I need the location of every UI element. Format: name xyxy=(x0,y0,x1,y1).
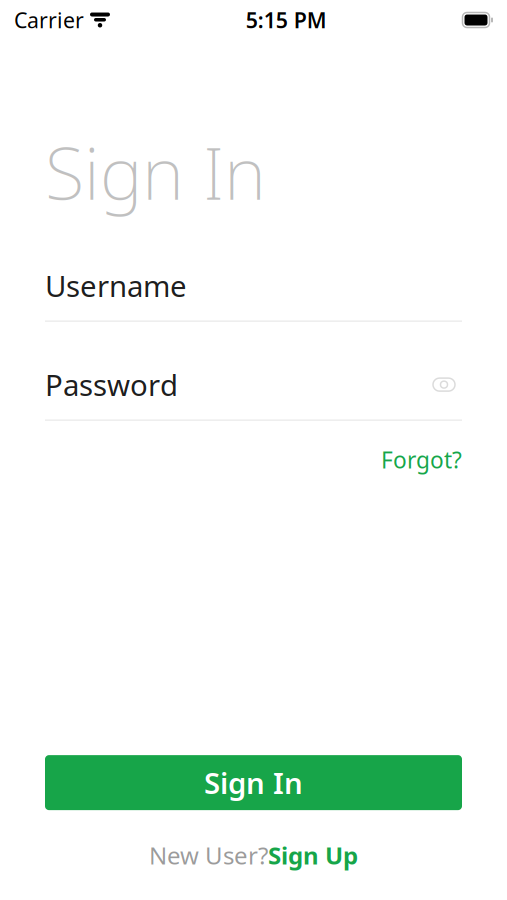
staticText: Forgot? xyxy=(381,445,462,475)
button[interactable]: New User? xyxy=(149,834,358,876)
button[interactable]: Forgot? xyxy=(381,440,462,480)
staticText: Sign Up xyxy=(268,839,358,871)
button[interactable]: Show password xyxy=(426,369,462,401)
button[interactable]: Sign In xyxy=(45,755,462,810)
staticText: New User? xyxy=(149,839,268,871)
staticText: Password xyxy=(45,365,178,404)
staticText: Carrier xyxy=(14,6,84,34)
staticText: Sign In xyxy=(204,763,303,802)
staticText: Username xyxy=(45,266,187,305)
staticText: Sign In xyxy=(45,124,266,220)
staticText: 5:15 PM xyxy=(246,6,327,34)
